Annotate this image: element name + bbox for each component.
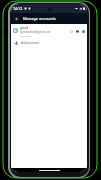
button[interactable]: G: [11, 24, 87, 37]
staticText: 14:12: [13, 6, 23, 11]
staticText: Add account: [21, 41, 40, 45]
button[interactable]: Edit: [74, 28, 80, 34]
staticText: good: [20, 25, 29, 29]
staticText: G: [14, 28, 17, 33]
staticText: goodandroid@gmail.com: [20, 30, 51, 34]
button[interactable]: Add account: [11, 38, 87, 47]
button[interactable]: Remove account: [80, 28, 86, 34]
staticText: Sync is on: [20, 35, 31, 38]
button[interactable]: Sync: [68, 28, 74, 34]
button[interactable]: Navigate up: [13, 15, 21, 23]
staticText: Manage accounts: [23, 16, 56, 21]
